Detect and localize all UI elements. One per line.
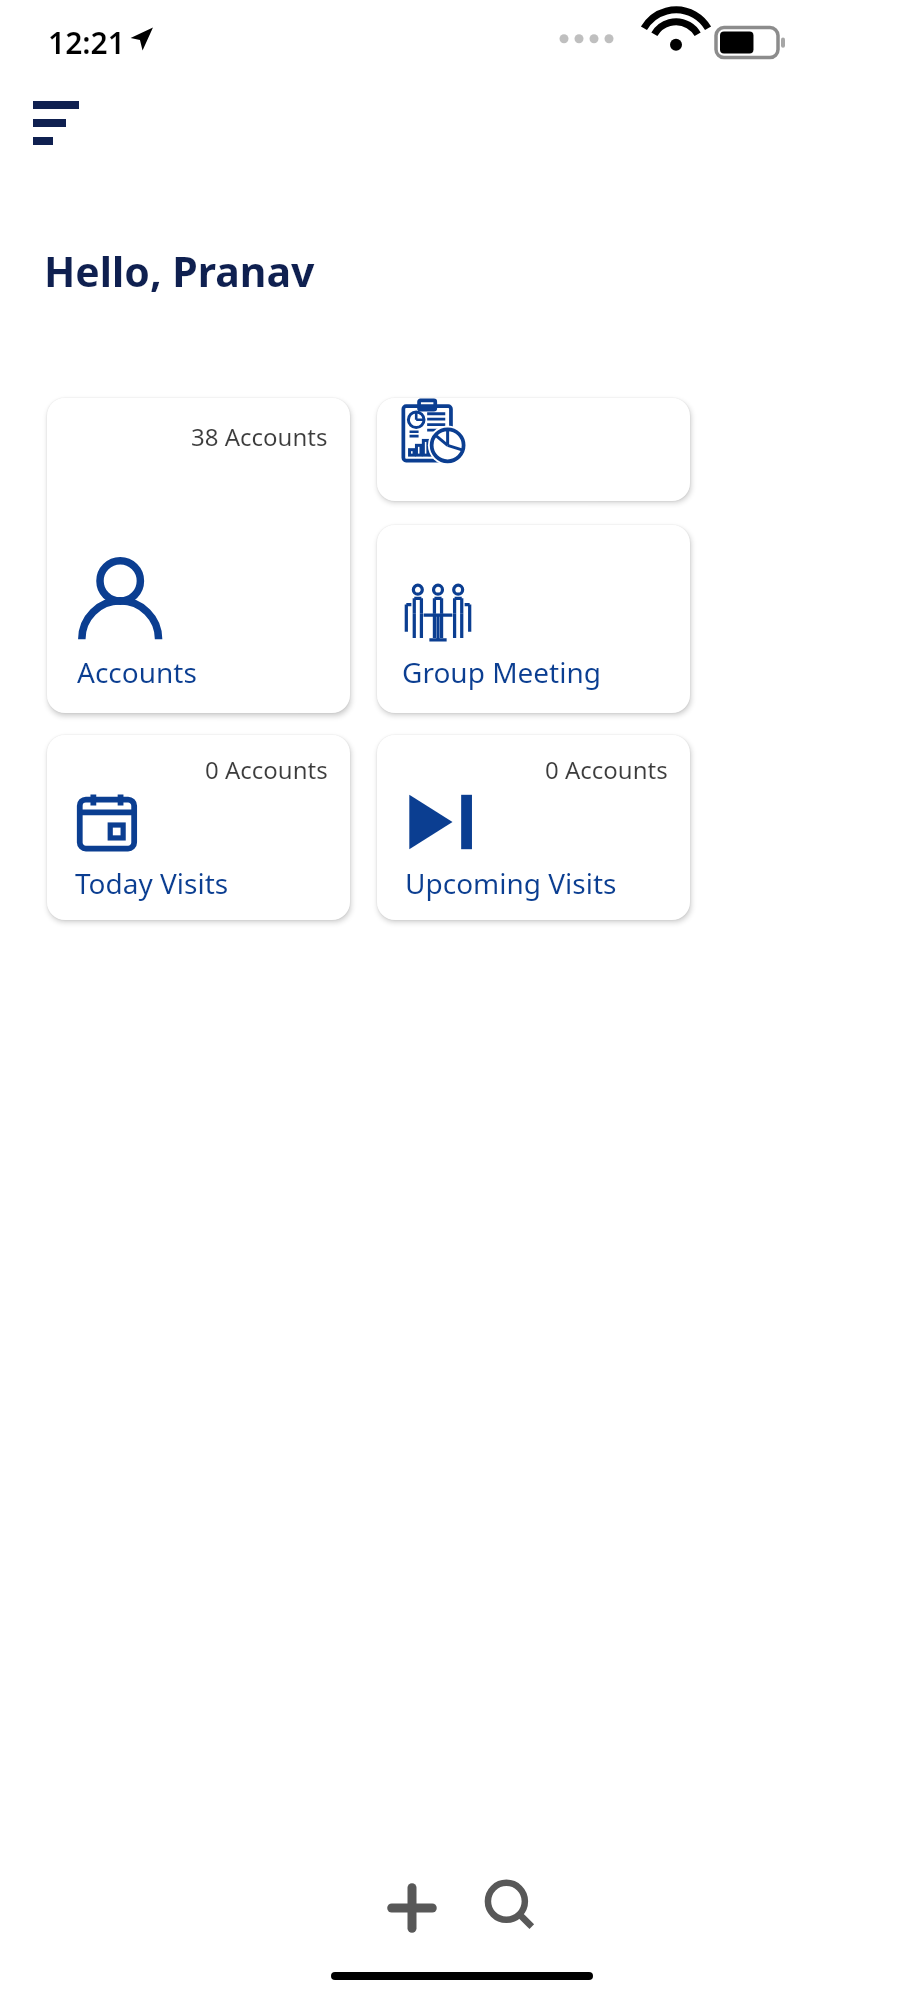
staticText: 12:21 (48, 22, 125, 63)
button[interactable]: Search (468, 1864, 556, 1952)
staticText: 0 Accounts (205, 753, 328, 786)
button[interactable]: Group Meeting (377, 525, 690, 713)
button[interactable]: Accounts (47, 398, 350, 713)
staticText: Accounts (77, 653, 197, 691)
staticText: 38 Accounts (191, 420, 328, 453)
button[interactable]: Report (377, 398, 690, 501)
staticText: Today Visits (75, 864, 229, 902)
staticText: Hello, Pranav (44, 243, 315, 299)
button[interactable]: Today Visits (47, 735, 350, 920)
staticText: 0 Accounts (545, 753, 668, 786)
button[interactable]: Upcoming Visits (377, 735, 690, 920)
staticText: Group Meeting (402, 653, 601, 691)
button[interactable]: Add (368, 1864, 456, 1952)
staticText: Upcoming Visits (405, 864, 617, 902)
button[interactable]: Menu (20, 86, 92, 150)
